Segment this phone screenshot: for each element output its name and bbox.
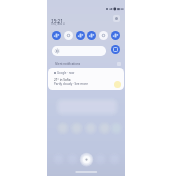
button[interactable]: Expand quick settings	[111, 45, 120, 54]
button[interactable]: Settings	[113, 15, 120, 22]
button[interactable]: Quick setting 4	[87, 31, 96, 40]
button[interactable]: Quick setting 6	[111, 31, 120, 40]
staticText: 15:21	[51, 18, 63, 24]
staticText: Partly cloudy · See more	[54, 82, 88, 86]
button[interactable]: Google · now	[48, 68, 124, 90]
staticText: Silent notifications	[55, 62, 81, 66]
button[interactable]: Quick setting 2	[64, 31, 73, 40]
staticText: Thu, Nov 4	[51, 22, 65, 26]
staticText: 21° in Sofia	[54, 78, 71, 82]
staticText: Google · now	[57, 71, 75, 75]
button[interactable]: Quick setting 5	[99, 31, 108, 40]
button[interactable]: Quick setting 3	[76, 31, 85, 40]
button[interactable]: Quick setting 1	[52, 31, 61, 40]
button[interactable]: Brightness	[52, 46, 106, 56]
